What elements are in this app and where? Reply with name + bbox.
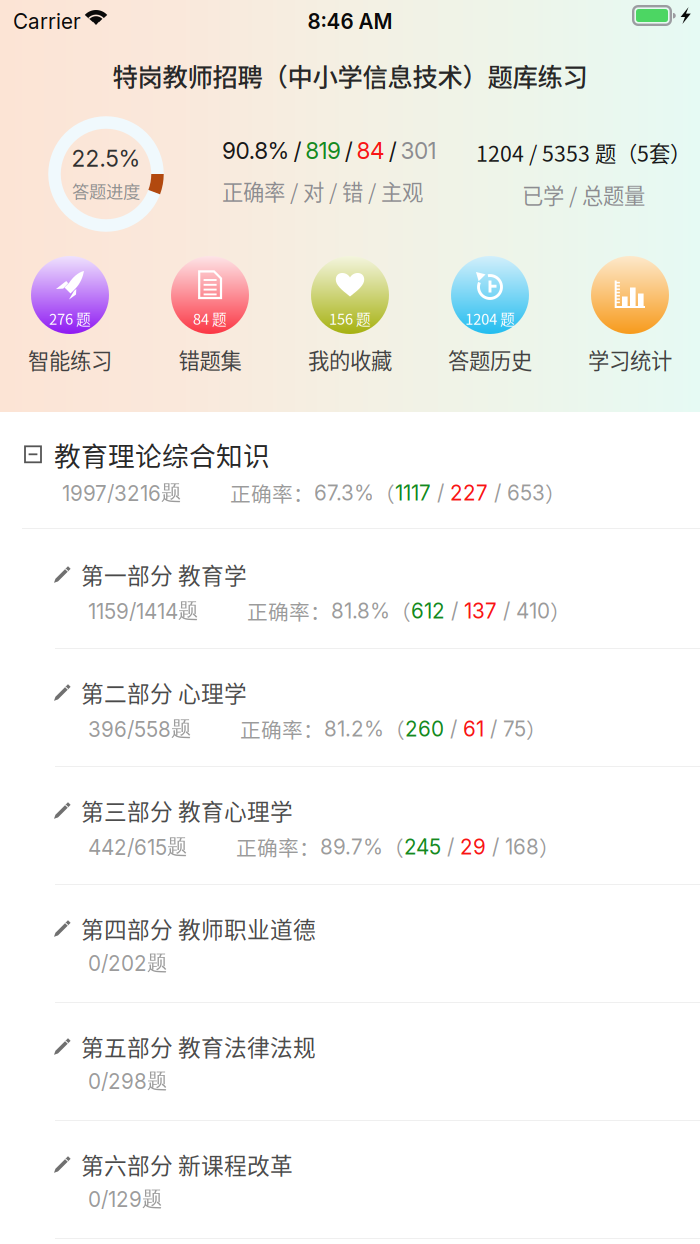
staticText: 第一部分 教育学: [81, 558, 247, 591]
staticText: 90.8%: [222, 137, 290, 164]
staticText: 84 题: [193, 308, 227, 329]
button[interactable]: 156 题: [280, 256, 420, 375]
staticText: 正确率：: [247, 596, 331, 626]
staticText: 8:46 AM: [307, 9, 392, 34]
staticText: 1997/3216题: [62, 480, 182, 506]
staticText: 67.3%: [314, 480, 374, 505]
button[interactable]: 1204 题: [420, 256, 560, 375]
staticText: /: [385, 137, 401, 164]
button[interactable]: [0, 1121, 700, 1239]
staticText: 396/558题: [88, 716, 192, 742]
staticText: Carrier: [13, 9, 81, 34]
staticText: /: [486, 834, 505, 859]
staticText: 第三部分 教育心理学: [81, 794, 293, 827]
staticText: 已学 / 总题量: [522, 179, 645, 210]
staticText: 75: [503, 716, 526, 741]
staticText: 260: [405, 716, 444, 741]
staticText: （: [374, 478, 395, 508]
staticText: 612: [411, 598, 445, 623]
staticText: （: [383, 832, 404, 862]
staticText: 276 题: [49, 308, 91, 329]
staticText: 0/298题: [88, 1068, 168, 1094]
staticText: 第五部分 教育法律法规: [81, 1030, 316, 1063]
staticText: 29: [460, 834, 486, 859]
staticText: /: [441, 834, 460, 859]
button[interactable]: 276 题: [0, 256, 140, 375]
button[interactable]: [0, 531, 700, 649]
staticText: 442/615题: [88, 834, 188, 860]
staticText: 301: [401, 137, 436, 164]
staticText: 第二部分 心理学: [81, 676, 247, 709]
staticText: 245: [404, 834, 441, 859]
staticText: 正确率：: [230, 478, 314, 508]
staticText: 答题历史: [448, 344, 532, 375]
staticText: /: [444, 716, 463, 741]
button[interactable]: 学习统计: [560, 256, 700, 375]
staticText: 特岗教师招聘（中小学信息技术）题库练习: [112, 57, 587, 94]
staticText: 0/202题: [88, 950, 168, 976]
staticText: /: [484, 716, 503, 741]
staticText: 答题进度: [72, 178, 140, 203]
staticText: ）: [550, 596, 571, 626]
staticText: 第六部分 新课程改革: [81, 1148, 293, 1181]
staticText: /: [290, 137, 305, 164]
staticText: 89.7%: [320, 834, 383, 859]
staticText: /: [497, 598, 516, 623]
button[interactable]: 84 题: [140, 256, 280, 375]
staticText: 168: [505, 834, 539, 859]
staticText: ）: [539, 832, 560, 862]
staticText: 137: [464, 598, 497, 623]
staticText: 81.2%: [324, 716, 384, 741]
staticText: 156 题: [329, 308, 371, 329]
button[interactable]: [0, 885, 700, 1003]
staticText: /: [431, 480, 450, 505]
staticText: 1204 题: [465, 308, 515, 329]
staticText: 22.5%: [71, 145, 140, 172]
staticText: 正确率 / 对 / 错 / 主观: [222, 175, 423, 206]
staticText: 正确率：: [236, 832, 320, 862]
staticText: 我的收藏: [308, 344, 392, 375]
staticText: 0/129题: [88, 1186, 163, 1212]
staticText: 学习统计: [588, 344, 672, 375]
staticText: 1159/1414题: [88, 598, 199, 624]
staticText: 81.8%: [331, 598, 390, 623]
staticText: 84: [357, 137, 385, 164]
staticText: 教育理论综合知识: [54, 435, 270, 474]
staticText: （: [390, 596, 411, 626]
staticText: 819: [305, 137, 341, 164]
staticText: 第四部分 教师职业道德: [81, 912, 316, 945]
staticText: 智能练习: [28, 344, 112, 375]
staticText: /: [488, 480, 507, 505]
staticText: 错题集: [178, 344, 241, 375]
staticText: 410: [516, 598, 550, 623]
staticText: /: [445, 598, 464, 623]
staticText: 1204 / 5353 题（5套）: [476, 137, 691, 168]
staticText: （: [384, 714, 405, 744]
staticText: /: [341, 137, 357, 164]
staticText: 正确率：: [240, 714, 324, 744]
staticText: 227: [450, 480, 488, 505]
button[interactable]: [0, 767, 700, 885]
staticText: 653: [507, 480, 545, 505]
staticText: ）: [545, 478, 566, 508]
button[interactable]: [0, 649, 700, 767]
staticText: ）: [526, 714, 547, 744]
button[interactable]: [0, 1003, 700, 1121]
staticText: 1117: [395, 480, 431, 505]
staticText: 61: [463, 716, 484, 741]
